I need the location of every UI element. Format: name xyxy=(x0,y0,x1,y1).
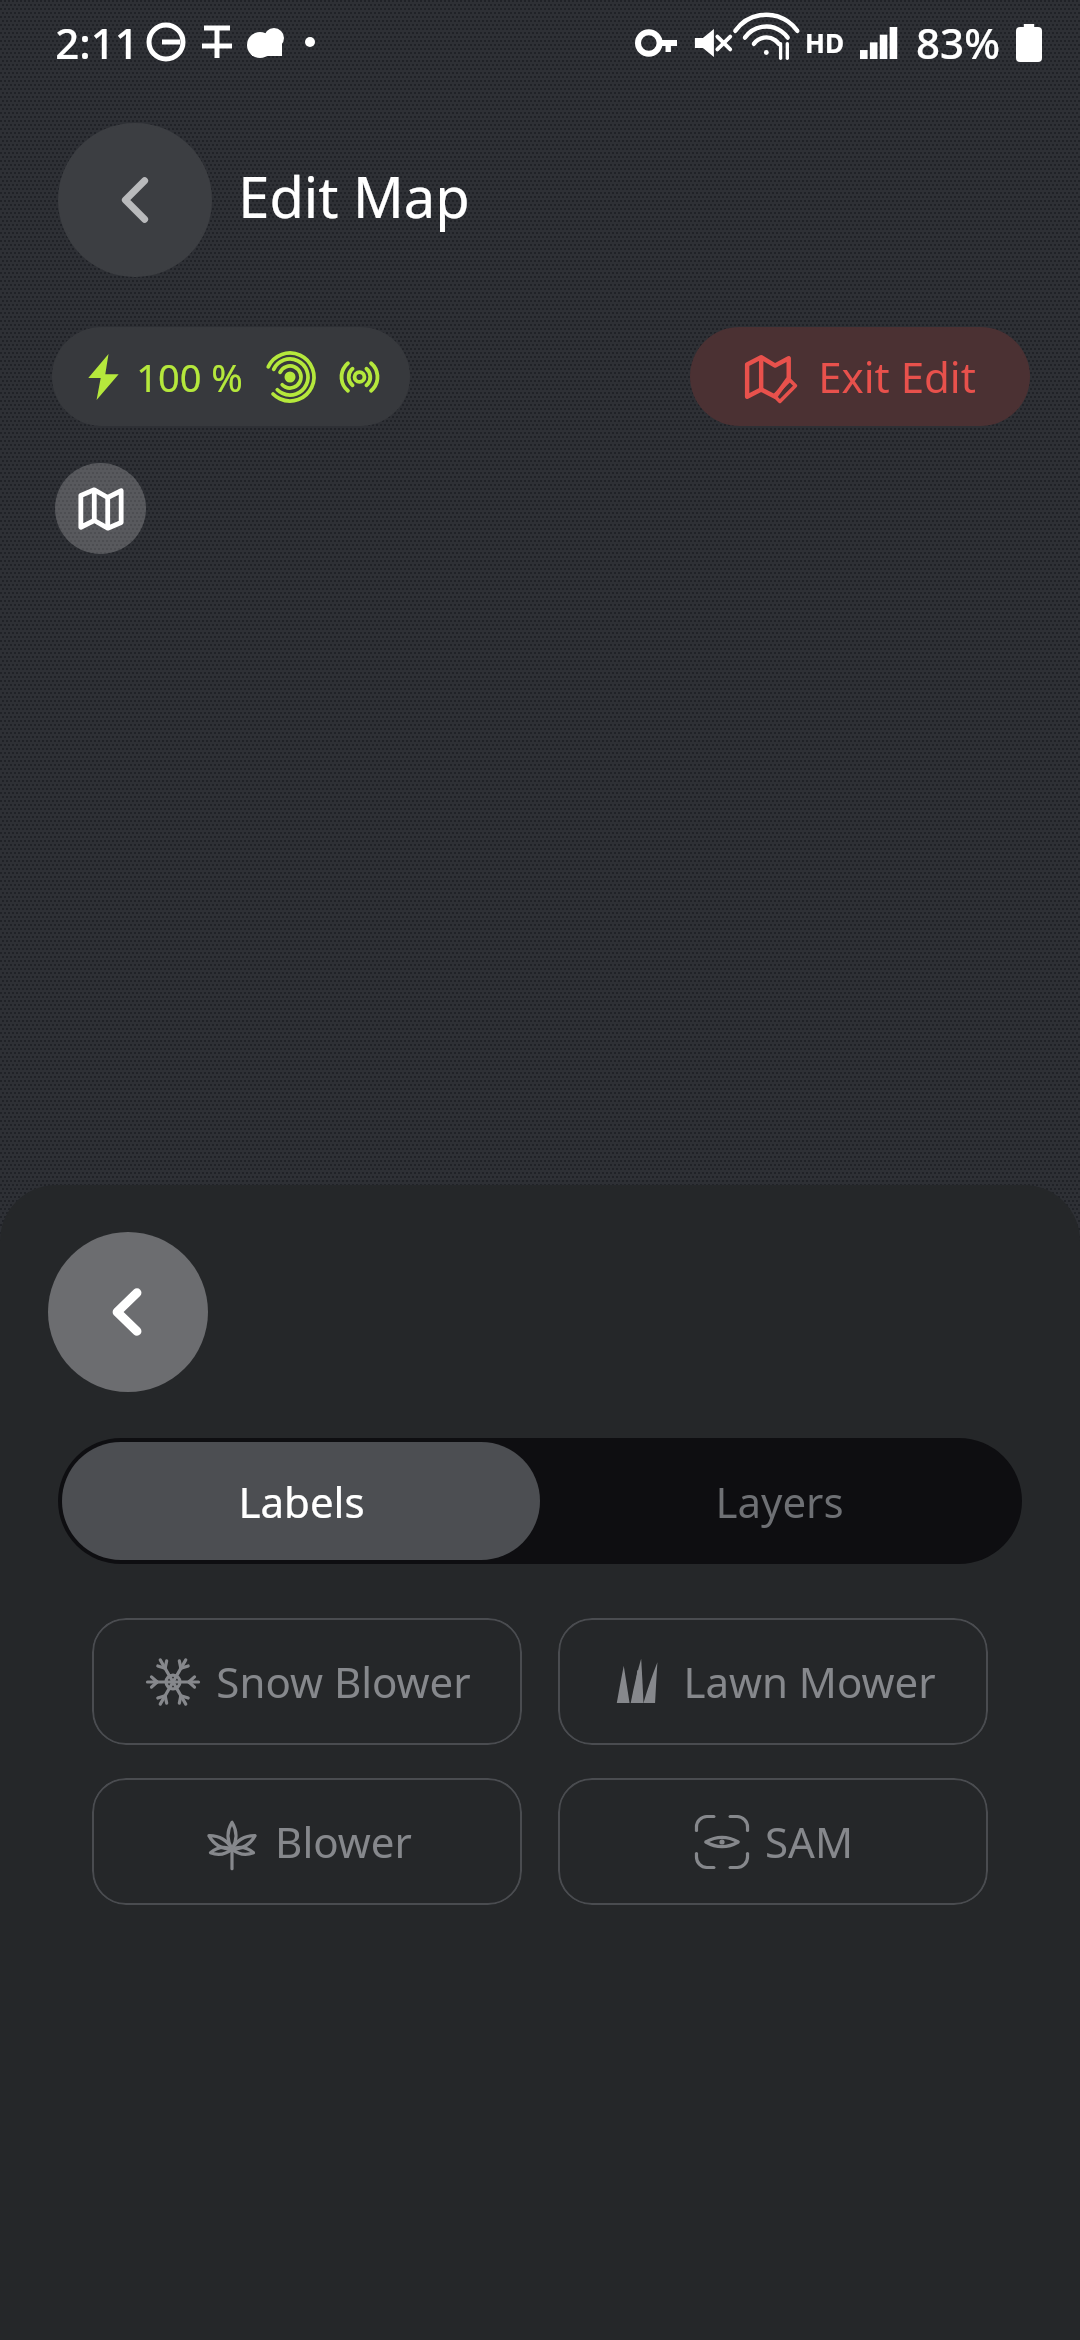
staticText: SAM xyxy=(765,1813,853,1870)
staticText: HD xyxy=(805,25,844,60)
button[interactable]: Back xyxy=(48,1232,208,1392)
button[interactable]: Blower xyxy=(92,1778,522,1905)
button[interactable]: Labels xyxy=(62,1442,540,1560)
staticText: Lawn Mower xyxy=(683,1653,936,1710)
button[interactable]: 100 % xyxy=(52,327,410,426)
staticText: Exit Edit xyxy=(818,348,976,405)
staticText: Edit Map xyxy=(238,158,470,234)
button[interactable]: Layers xyxy=(540,1442,1018,1560)
button[interactable]: SAM xyxy=(558,1778,988,1905)
staticText: 2:11 xyxy=(55,14,139,71)
button[interactable]: Back xyxy=(58,123,212,277)
button[interactable]: Map layers xyxy=(55,463,146,554)
staticText: 100 % xyxy=(136,351,243,403)
staticText: Snow Blower xyxy=(216,1653,471,1710)
staticText: Layers xyxy=(715,1473,844,1530)
staticText: 83% xyxy=(916,14,1000,71)
staticText: Blower xyxy=(275,1813,412,1870)
button[interactable]: Snow Blower xyxy=(92,1618,522,1745)
button[interactable]: Lawn Mower xyxy=(558,1618,988,1745)
staticText: Labels xyxy=(238,1473,365,1530)
button[interactable]: Exit Edit xyxy=(690,327,1030,426)
